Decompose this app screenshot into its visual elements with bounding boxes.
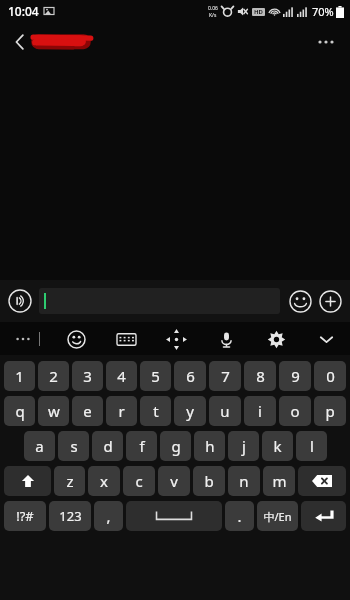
staticText: d <box>103 436 113 456</box>
staticText: , <box>106 506 111 526</box>
staticText: j <box>242 436 246 456</box>
staticText: 10:04 <box>8 3 39 19</box>
button[interactable]: q <box>4 396 35 426</box>
staticText: l <box>310 436 314 456</box>
button[interactable]: s <box>58 431 89 461</box>
staticText: 7 <box>221 366 230 386</box>
staticText: v <box>170 471 178 491</box>
button[interactable]: j <box>228 431 259 461</box>
button[interactable]: b <box>193 466 225 496</box>
staticText: f <box>139 436 145 456</box>
staticText: 9 <box>291 366 300 386</box>
button[interactable]: 2 <box>38 361 69 391</box>
button[interactable]: m <box>263 466 295 496</box>
staticText: p <box>325 401 335 421</box>
button[interactable]: 3 <box>72 361 103 391</box>
button[interactable]: Voice message <box>7 288 33 314</box>
button[interactable]: i <box>244 396 276 426</box>
staticText: e <box>83 401 92 421</box>
staticText: y <box>186 401 194 421</box>
button[interactable]: 0 <box>314 361 346 391</box>
staticText: 4 <box>117 366 126 386</box>
staticText: 3 <box>83 366 92 386</box>
button[interactable]: f <box>126 431 157 461</box>
staticText: k <box>273 436 282 456</box>
button[interactable]: z <box>54 466 85 496</box>
button[interactable]: a <box>24 431 55 461</box>
button[interactable]: Backspace <box>298 466 346 496</box>
button[interactable]: c <box>123 466 155 496</box>
staticText: z <box>66 471 74 491</box>
staticText: a <box>35 436 44 456</box>
staticText: c <box>135 471 143 491</box>
staticText: n <box>239 471 249 491</box>
button[interactable]: 中/En <box>257 501 298 531</box>
staticText: 5 <box>151 366 160 386</box>
staticText: 中/En <box>263 509 292 524</box>
button[interactable]: u <box>209 396 241 426</box>
staticText: h <box>205 436 215 456</box>
staticText: t <box>153 401 159 421</box>
button[interactable]: e <box>72 396 103 426</box>
button[interactable]: 9 <box>279 361 311 391</box>
button[interactable] <box>39 288 280 314</box>
button[interactable]: v <box>158 466 190 496</box>
button[interactable]: p <box>314 396 346 426</box>
button[interactable]: x <box>88 466 120 496</box>
button[interactable]: t <box>140 396 171 426</box>
staticText: b <box>204 471 214 491</box>
button[interactable]: . <box>225 501 254 531</box>
button[interactable]: Settings <box>262 325 290 353</box>
button[interactable] <box>30 30 92 54</box>
staticText: 0.06 <box>208 5 218 12</box>
staticText: 6 <box>186 366 195 386</box>
button[interactable]: d <box>92 431 123 461</box>
button[interactable]: Add attachment <box>317 288 343 314</box>
button[interactable]: Keyboard layout <box>112 325 140 353</box>
button[interactable]: Enter <box>301 501 346 531</box>
staticText: 0 <box>326 366 335 386</box>
button[interactable]: Hide keyboard <box>312 325 340 353</box>
button[interactable]: !?# <box>4 501 46 531</box>
button[interactable]: More options <box>310 26 342 58</box>
staticText: 123 <box>59 507 82 525</box>
button[interactable]: Back <box>4 26 36 58</box>
button[interactable]: r <box>106 396 137 426</box>
staticText: o <box>290 401 300 421</box>
button[interactable]: n <box>228 466 260 496</box>
staticText: g <box>171 436 181 456</box>
staticText: K/s <box>209 12 217 19</box>
staticText: m <box>272 471 287 491</box>
button[interactable]: g <box>160 431 191 461</box>
button[interactable]: Shift <box>4 466 51 496</box>
button[interactable]: , <box>94 501 123 531</box>
button[interactable]: 1 <box>4 361 35 391</box>
button[interactable]: k <box>262 431 293 461</box>
button[interactable]: o <box>279 396 311 426</box>
button[interactable]: 4 <box>106 361 137 391</box>
button[interactable]: 5 <box>140 361 171 391</box>
button[interactable]: 8 <box>244 361 276 391</box>
button[interactable]: Sticker <box>62 325 90 353</box>
button[interactable]: Emoji <box>287 288 313 314</box>
staticText: x <box>100 471 108 491</box>
staticText: q <box>15 401 25 421</box>
button[interactable]: More <box>10 326 36 352</box>
staticText: r <box>118 401 125 421</box>
button[interactable]: Move cursor <box>162 325 190 353</box>
staticText: 70% <box>312 4 334 19</box>
staticText: 8 <box>256 366 265 386</box>
button[interactable]: Voice input <box>212 325 240 353</box>
button[interactable]: h <box>194 431 225 461</box>
staticText: !?# <box>16 507 34 525</box>
button[interactable]: l <box>296 431 327 461</box>
button[interactable]: w <box>38 396 69 426</box>
button[interactable]: y <box>174 396 206 426</box>
staticText: s <box>70 436 78 456</box>
button[interactable]: Space <box>126 501 222 531</box>
staticText: . <box>237 506 242 526</box>
button[interactable]: 123 <box>49 501 91 531</box>
button[interactable]: 6 <box>174 361 206 391</box>
button[interactable]: 7 <box>209 361 241 391</box>
staticText: 1 <box>15 366 24 386</box>
